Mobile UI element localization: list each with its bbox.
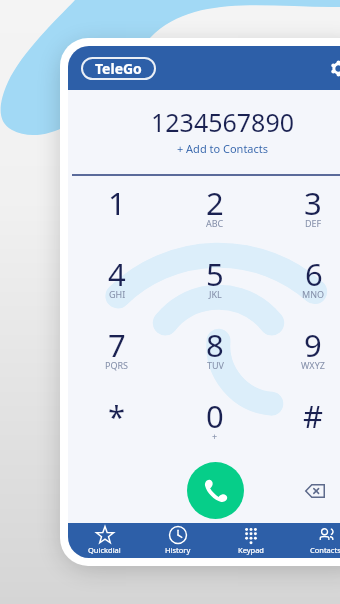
button[interactable]: Call bbox=[187, 462, 244, 519]
staticText: 5 bbox=[206, 253, 224, 295]
staticText: PQRS bbox=[105, 359, 129, 371]
button[interactable]: Keypad bbox=[214, 523, 288, 558]
staticText: ABC bbox=[206, 217, 224, 229]
staticText: GHI bbox=[109, 288, 126, 300]
button[interactable]: 9 bbox=[264, 318, 340, 389]
staticText: 6 bbox=[305, 253, 323, 295]
staticText: 0 bbox=[206, 395, 224, 437]
button[interactable]: TeleGo bbox=[81, 57, 156, 80]
staticText: TeleGo bbox=[95, 59, 142, 78]
staticText: # bbox=[303, 395, 324, 437]
staticText: 3 bbox=[304, 182, 322, 224]
button[interactable]: 5 bbox=[166, 247, 264, 318]
button[interactable]: 3 bbox=[264, 176, 340, 247]
button[interactable]: * bbox=[68, 389, 166, 460]
button[interactable]: Backspace bbox=[298, 474, 332, 508]
button[interactable]: Contacts bbox=[288, 523, 340, 558]
staticText: 9 bbox=[304, 324, 322, 366]
staticText: DEF bbox=[305, 217, 322, 229]
button[interactable]: Quickdial bbox=[68, 523, 141, 558]
staticText: Keypad bbox=[238, 545, 264, 555]
button[interactable]: 8 bbox=[166, 318, 264, 389]
staticText: 1234567890 bbox=[83, 105, 340, 139]
staticText: 2 bbox=[206, 182, 224, 224]
staticText: 4 bbox=[108, 253, 126, 295]
staticText: 7 bbox=[108, 324, 126, 366]
button[interactable]: # bbox=[264, 389, 340, 460]
staticText: Quickdial bbox=[88, 545, 121, 555]
button[interactable]: History bbox=[141, 523, 214, 558]
staticText: WXYZ bbox=[301, 359, 325, 371]
staticText: * bbox=[108, 395, 126, 437]
staticText: MNO bbox=[302, 288, 325, 300]
staticText: 8 bbox=[206, 324, 224, 366]
button[interactable]: 0 bbox=[166, 389, 264, 460]
staticText: Contacts bbox=[310, 545, 340, 555]
button[interactable]: 1 bbox=[68, 176, 166, 247]
staticText: TUV bbox=[207, 359, 224, 371]
button[interactable]: Settings bbox=[325, 55, 340, 81]
staticText: + bbox=[212, 430, 218, 442]
staticText: 1 bbox=[108, 182, 126, 224]
button[interactable]: 7 bbox=[68, 318, 166, 389]
staticText: History bbox=[165, 545, 191, 555]
button[interactable]: 4 bbox=[68, 247, 166, 318]
button[interactable]: + Add to Contacts bbox=[68, 141, 340, 156]
button[interactable]: 6 bbox=[264, 247, 340, 318]
staticText: JKL bbox=[209, 288, 222, 300]
button[interactable]: 2 bbox=[166, 176, 264, 247]
